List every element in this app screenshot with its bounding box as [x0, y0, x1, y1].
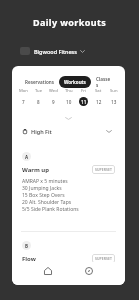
button[interactable]: Tue [31, 88, 46, 106]
button[interactable]: Bigwood Fitness [18, 45, 87, 57]
staticText: Workouts [64, 79, 86, 85]
staticText: SUPERSET [95, 256, 112, 261]
staticText: Daily workouts [33, 16, 107, 28]
staticText: 12 [96, 99, 102, 105]
staticText: Bigwood Fitness [34, 48, 77, 55]
button[interactable]: Workouts [59, 76, 91, 88]
staticText: A [25, 154, 29, 160]
staticText: Sat [95, 88, 102, 94]
button[interactable]: Sat [91, 88, 106, 106]
button[interactable]: Home [39, 263, 57, 279]
staticText: Flow [22, 255, 36, 263]
staticText: 5/5 Side Plank Rotations [22, 206, 79, 213]
staticText: Wed [49, 88, 58, 94]
button[interactable]: Thu [61, 88, 76, 106]
staticText: 11 [81, 99, 87, 105]
staticText: Fri [81, 88, 86, 94]
staticText: Mon [19, 88, 28, 94]
button[interactable]: Classes [91, 73, 117, 91]
button[interactable]: Explore [80, 263, 98, 279]
button[interactable]: Mon [16, 88, 31, 106]
staticText: 30 Jumping Jacks [22, 185, 62, 192]
button[interactable]: Wed [46, 88, 61, 106]
staticText: 20 Alt. Shoulder Taps [22, 199, 72, 206]
staticText: Thu [65, 88, 73, 94]
button[interactable]: Reservations [20, 76, 59, 88]
staticText: 15 Box Step Overs [22, 192, 65, 199]
staticText: 7 [22, 99, 25, 105]
staticText: Sun [110, 88, 118, 94]
button[interactable]: High Fit [12, 128, 125, 135]
staticText: 9 [52, 99, 55, 105]
button[interactable]: SUPERSET [92, 254, 115, 263]
staticText: 8 [37, 99, 40, 105]
button[interactable]: SUPERSET [92, 165, 115, 174]
staticText: SUPERSET [95, 167, 112, 172]
staticText: B [25, 243, 28, 249]
staticText: Classes [96, 76, 112, 88]
button[interactable]: Sun [106, 88, 121, 106]
staticText: High Fit [31, 128, 52, 135]
button[interactable]: Fri [76, 88, 91, 106]
staticText: Reservations [25, 79, 54, 85]
staticText: Warm up [22, 166, 50, 174]
staticText: Tue [35, 88, 43, 94]
staticText: 13 [111, 99, 117, 105]
staticText: AMRAP x 5 minutes [22, 178, 68, 185]
staticText: 10 [66, 99, 72, 105]
